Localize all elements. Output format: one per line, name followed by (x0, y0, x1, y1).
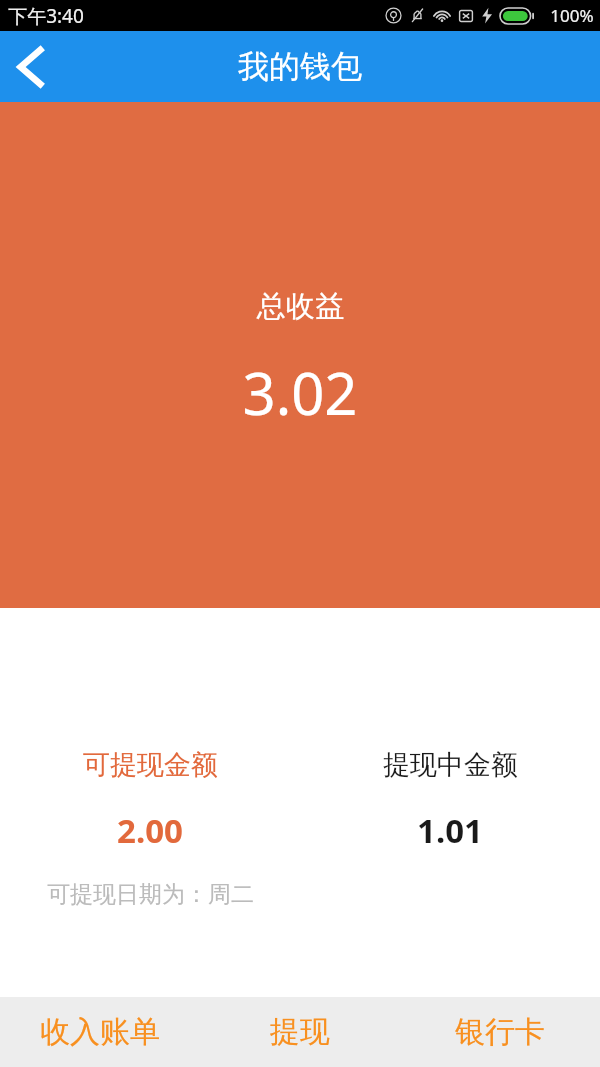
staticText: 100% (550, 4, 594, 27)
staticText: 3.02 (242, 353, 358, 432)
staticText: 1.01 (417, 808, 483, 853)
staticText: 总收益 (257, 288, 344, 325)
button[interactable]: 可提现金额 (0, 748, 300, 909)
button[interactable]: 银行卡 (400, 997, 600, 1067)
staticText: 收入账单 (40, 1013, 160, 1051)
staticText: 银行卡 (455, 1013, 545, 1051)
staticText: 下午3:40 (8, 3, 84, 29)
staticText: 我的钱包 (238, 47, 362, 86)
button[interactable]: 提现 (200, 997, 400, 1067)
button[interactable]: 提现中金额 (300, 748, 600, 853)
button[interactable]: 返回 (0, 31, 64, 102)
staticText: 提现中金额 (383, 748, 518, 782)
staticText: 提现 (270, 1013, 330, 1051)
staticText: 2.00 (117, 808, 183, 853)
staticText: 可提现金额 (83, 748, 218, 782)
button[interactable]: 收入账单 (0, 997, 200, 1067)
staticText: 可提现日期为：周二 (47, 880, 254, 909)
